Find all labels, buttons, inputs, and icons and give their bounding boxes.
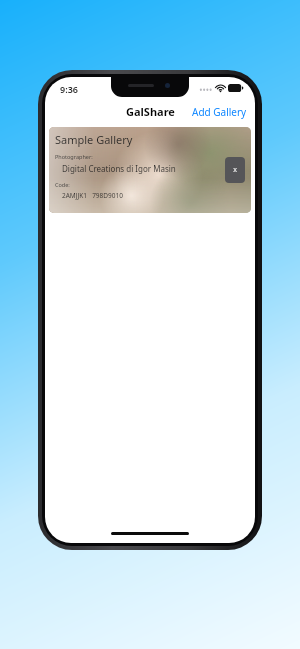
staticText: Code: — [55, 181, 70, 188]
staticText: GalShare — [126, 104, 175, 119]
staticText: x — [233, 165, 237, 175]
staticText: Sample Gallery — [55, 132, 133, 147]
staticText: 2AMJJK1 798D9010 — [62, 191, 123, 200]
button[interactable]: Add Gallery — [184, 101, 255, 123]
staticText: Digital Creations di Igor Masin — [62, 163, 176, 174]
button[interactable]: Remove gallery — [225, 157, 245, 183]
staticText: Photographer: — [55, 153, 93, 160]
staticText: 9:36 — [60, 83, 78, 95]
staticText: Add Gallery — [192, 105, 247, 119]
button[interactable]: Sample Gallery — [49, 127, 251, 213]
